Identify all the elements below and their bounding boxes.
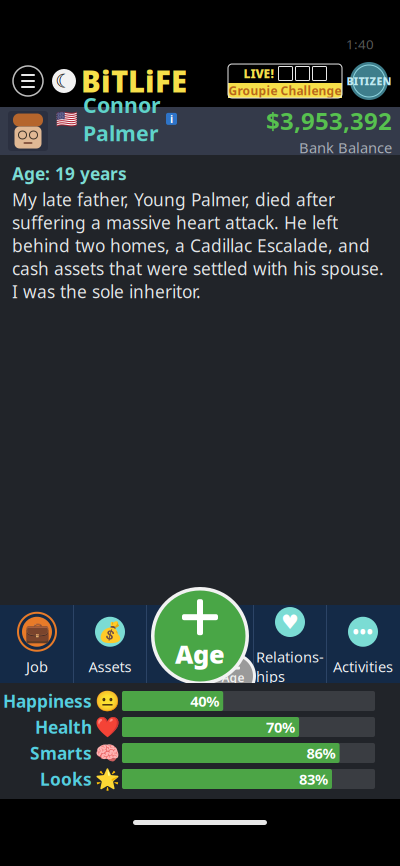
staticText: 💰 [97, 620, 122, 643]
staticText: Relationships [256, 647, 324, 686]
staticText: 70% [266, 717, 295, 737]
button[interactable]: 💰 [74, 605, 146, 683]
staticText: BiTLiFE [81, 61, 187, 100]
staticText: 86% [307, 743, 336, 763]
button[interactable]: Connor Palmer profile and bank balance [0, 107, 400, 155]
button[interactable]: Bitizen [344, 59, 394, 103]
staticText: 💼 [24, 620, 49, 643]
button[interactable]: Menu [6, 59, 50, 103]
staticText: Age: 19 years [12, 162, 127, 185]
staticText: 😐 [94, 690, 119, 712]
button[interactable]: Groupie Challenge [226, 62, 344, 100]
staticText: 83% [299, 769, 328, 789]
staticText: Connor Palmer [83, 90, 161, 147]
staticText: Assets [88, 657, 131, 676]
staticText: ♥ [281, 611, 299, 633]
staticText: 🇺🇸 [56, 109, 78, 129]
button[interactable]: Age up [150, 586, 250, 686]
staticText: Happiness [3, 689, 92, 712]
staticText: $3,953,392 [266, 105, 392, 137]
staticText: Job [26, 657, 48, 676]
staticText: 40% [190, 691, 219, 711]
staticText: Massage Therapist [78, 150, 221, 171]
staticText: ••• [352, 620, 373, 643]
staticText: 🧠 [94, 742, 119, 764]
button[interactable]: BitLife [50, 61, 187, 100]
button[interactable]: 💼 [1, 605, 73, 683]
button[interactable]: ♥ [254, 605, 326, 683]
staticText: Smarts [30, 741, 92, 764]
staticText: ❤️ [94, 716, 119, 738]
staticText: BITIZEN [346, 74, 391, 88]
staticText: Looks [40, 767, 92, 790]
staticText: ☾ [55, 70, 72, 92]
staticText: Bank Balance [299, 138, 392, 157]
staticText: Activities [333, 657, 393, 676]
staticText: Age [221, 669, 244, 685]
staticText: 🌟 [94, 768, 119, 790]
staticText: Age [175, 637, 225, 671]
button[interactable]: ••• [327, 605, 399, 683]
staticText: LIVE! [243, 65, 273, 81]
staticText: Health [35, 715, 92, 738]
staticText: i [170, 112, 173, 126]
staticText: My late father, Young Palmer, died after… [12, 188, 384, 303]
button[interactable]: Decrease Age [208, 651, 258, 701]
staticText: 🤝 [56, 153, 73, 168]
staticText: 1:40 [346, 35, 374, 53]
staticText: Groupie Challenge [228, 82, 341, 98]
